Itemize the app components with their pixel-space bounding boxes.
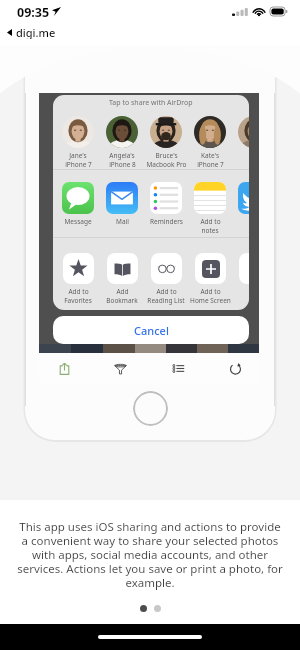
staticText: Cancel: [134, 323, 169, 338]
staticText: Message: [64, 217, 92, 226]
staticText: Favorites: [64, 296, 92, 305]
staticText: Mail: [116, 217, 129, 226]
staticText: iPhone 8: [109, 160, 136, 168]
staticText: Angela's: [109, 151, 135, 160]
button[interactable]: Cancel: [53, 316, 249, 344]
button[interactable]: List: [168, 358, 188, 378]
button[interactable]: Jane's: [56, 116, 100, 168]
button[interactable]: Add: [100, 253, 144, 305]
staticText: Home Screen: [190, 296, 231, 305]
staticText: Jane's: [69, 151, 87, 160]
button[interactable]: Angela's: [100, 116, 144, 168]
staticText: Add to: [200, 217, 221, 226]
staticText: 09:35: [17, 4, 50, 19]
staticText: Add: [116, 287, 129, 296]
staticText: Tap to share with AirDrop: [109, 98, 193, 108]
staticText: Reading List: [147, 296, 185, 305]
button[interactable]: Filter: [110, 358, 130, 378]
button[interactable]: Ma: [232, 116, 249, 160]
button[interactable]: Add to: [188, 253, 232, 305]
button[interactable]: Add to: [188, 182, 232, 235]
button[interactable]: Add to: [144, 253, 188, 305]
staticText: Bookmark: [106, 296, 138, 305]
staticText: iPhone 7: [197, 160, 224, 168]
button[interactable]: [232, 253, 249, 305]
staticText: Add to: [156, 287, 177, 296]
button[interactable]: Add to: [56, 253, 100, 305]
button[interactable]: Back to digi.me: [7, 25, 300, 39]
staticText: digi.me: [16, 25, 56, 39]
staticText: This app uses iOS sharing and actions to…: [17, 519, 283, 591]
button[interactable]: Bruce's: [144, 116, 188, 168]
staticText: notes: [201, 226, 219, 235]
staticText: iPhone 7: [65, 160, 92, 168]
button[interactable]: Mail: [100, 182, 144, 226]
staticText: Add to: [200, 287, 221, 296]
button[interactable]: Reminders: [144, 182, 188, 226]
button[interactable]: Refresh: [225, 358, 245, 378]
staticText: Reminders: [150, 217, 183, 226]
button[interactable]: Kate's: [188, 116, 232, 168]
staticText: Kate's: [201, 151, 219, 160]
button[interactable]: Message: [56, 182, 100, 226]
staticText: Add to: [68, 287, 89, 296]
button[interactable]: Tw: [232, 182, 249, 226]
button[interactable]: Share: [54, 358, 74, 378]
staticText: Macbook Pro: [146, 160, 187, 168]
button[interactable]: Home: [133, 391, 168, 426]
staticText: Bruce's: [155, 151, 178, 160]
